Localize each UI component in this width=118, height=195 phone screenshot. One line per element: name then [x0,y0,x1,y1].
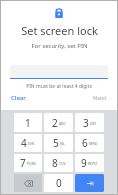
staticText: PIN must be at least 4 digits [26,83,92,90]
staticText: PQRS [27,161,36,166]
staticText: GHI [28,141,35,146]
button[interactable]: Clear [8,92,29,104]
button[interactable]: 4 [14,134,42,152]
staticText: 9 [81,156,87,170]
staticText: ABC [59,121,66,126]
staticText: 8 [52,156,58,170]
staticText: MNO [89,141,98,146]
button[interactable]: Backspace [14,174,42,192]
staticText: Next [93,94,107,102]
staticText: DEF [90,121,97,126]
button[interactable]: Next [90,92,110,104]
button[interactable]: 7 [14,154,42,172]
staticText: 0 [56,176,62,190]
staticText: JKL [60,141,65,146]
button[interactable]: 6 [75,134,104,152]
button[interactable]: 1 [14,113,42,132]
button[interactable]: 8 [44,154,73,172]
button[interactable]: 5 [44,134,73,152]
staticText: 2 [52,116,58,130]
button[interactable]: Enter [75,174,104,192]
staticText: TUV [59,161,66,166]
staticText: 6 [82,136,88,150]
staticText: 5 [53,136,59,150]
staticText: For security, set PIN [31,42,88,50]
button[interactable]: 2 [44,113,73,132]
staticText: WXYZ [88,161,98,166]
button[interactable]: 3 [75,113,104,132]
staticText: 4 [21,136,27,150]
button[interactable]: 9 [75,154,104,172]
staticText: Clear [11,94,26,102]
staticText: 3 [83,116,89,130]
staticText: Set screen lock [21,23,98,38]
button[interactable]: 0 [44,174,73,192]
button[interactable] [10,65,108,79]
staticText: 7 [20,156,26,170]
staticText: 1 [25,116,31,130]
